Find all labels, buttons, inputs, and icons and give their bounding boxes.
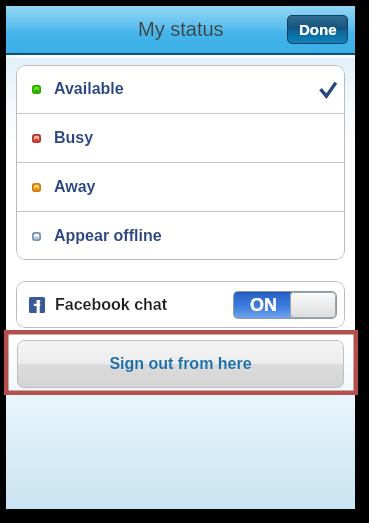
button[interactable]: Busy	[16, 114, 345, 162]
staticText: Available	[54, 80, 124, 98]
staticText: My status	[138, 18, 224, 40]
staticText: Sign out from here	[109, 355, 252, 373]
button[interactable]: Available	[16, 65, 345, 113]
staticText: Appear offline	[54, 227, 162, 245]
staticText: Away	[54, 178, 96, 196]
button[interactable]: Away	[16, 163, 345, 211]
button[interactable]: Facebook chat on/off toggle	[233, 291, 337, 319]
staticText: Done	[299, 21, 337, 38]
button[interactable]: Sign out from here	[17, 340, 344, 388]
staticText: Facebook chat	[55, 296, 168, 314]
staticText: ON	[250, 295, 277, 315]
button[interactable]: Appear offline	[16, 212, 345, 260]
button[interactable]: Done	[287, 15, 348, 44]
staticText: Busy	[54, 129, 94, 147]
